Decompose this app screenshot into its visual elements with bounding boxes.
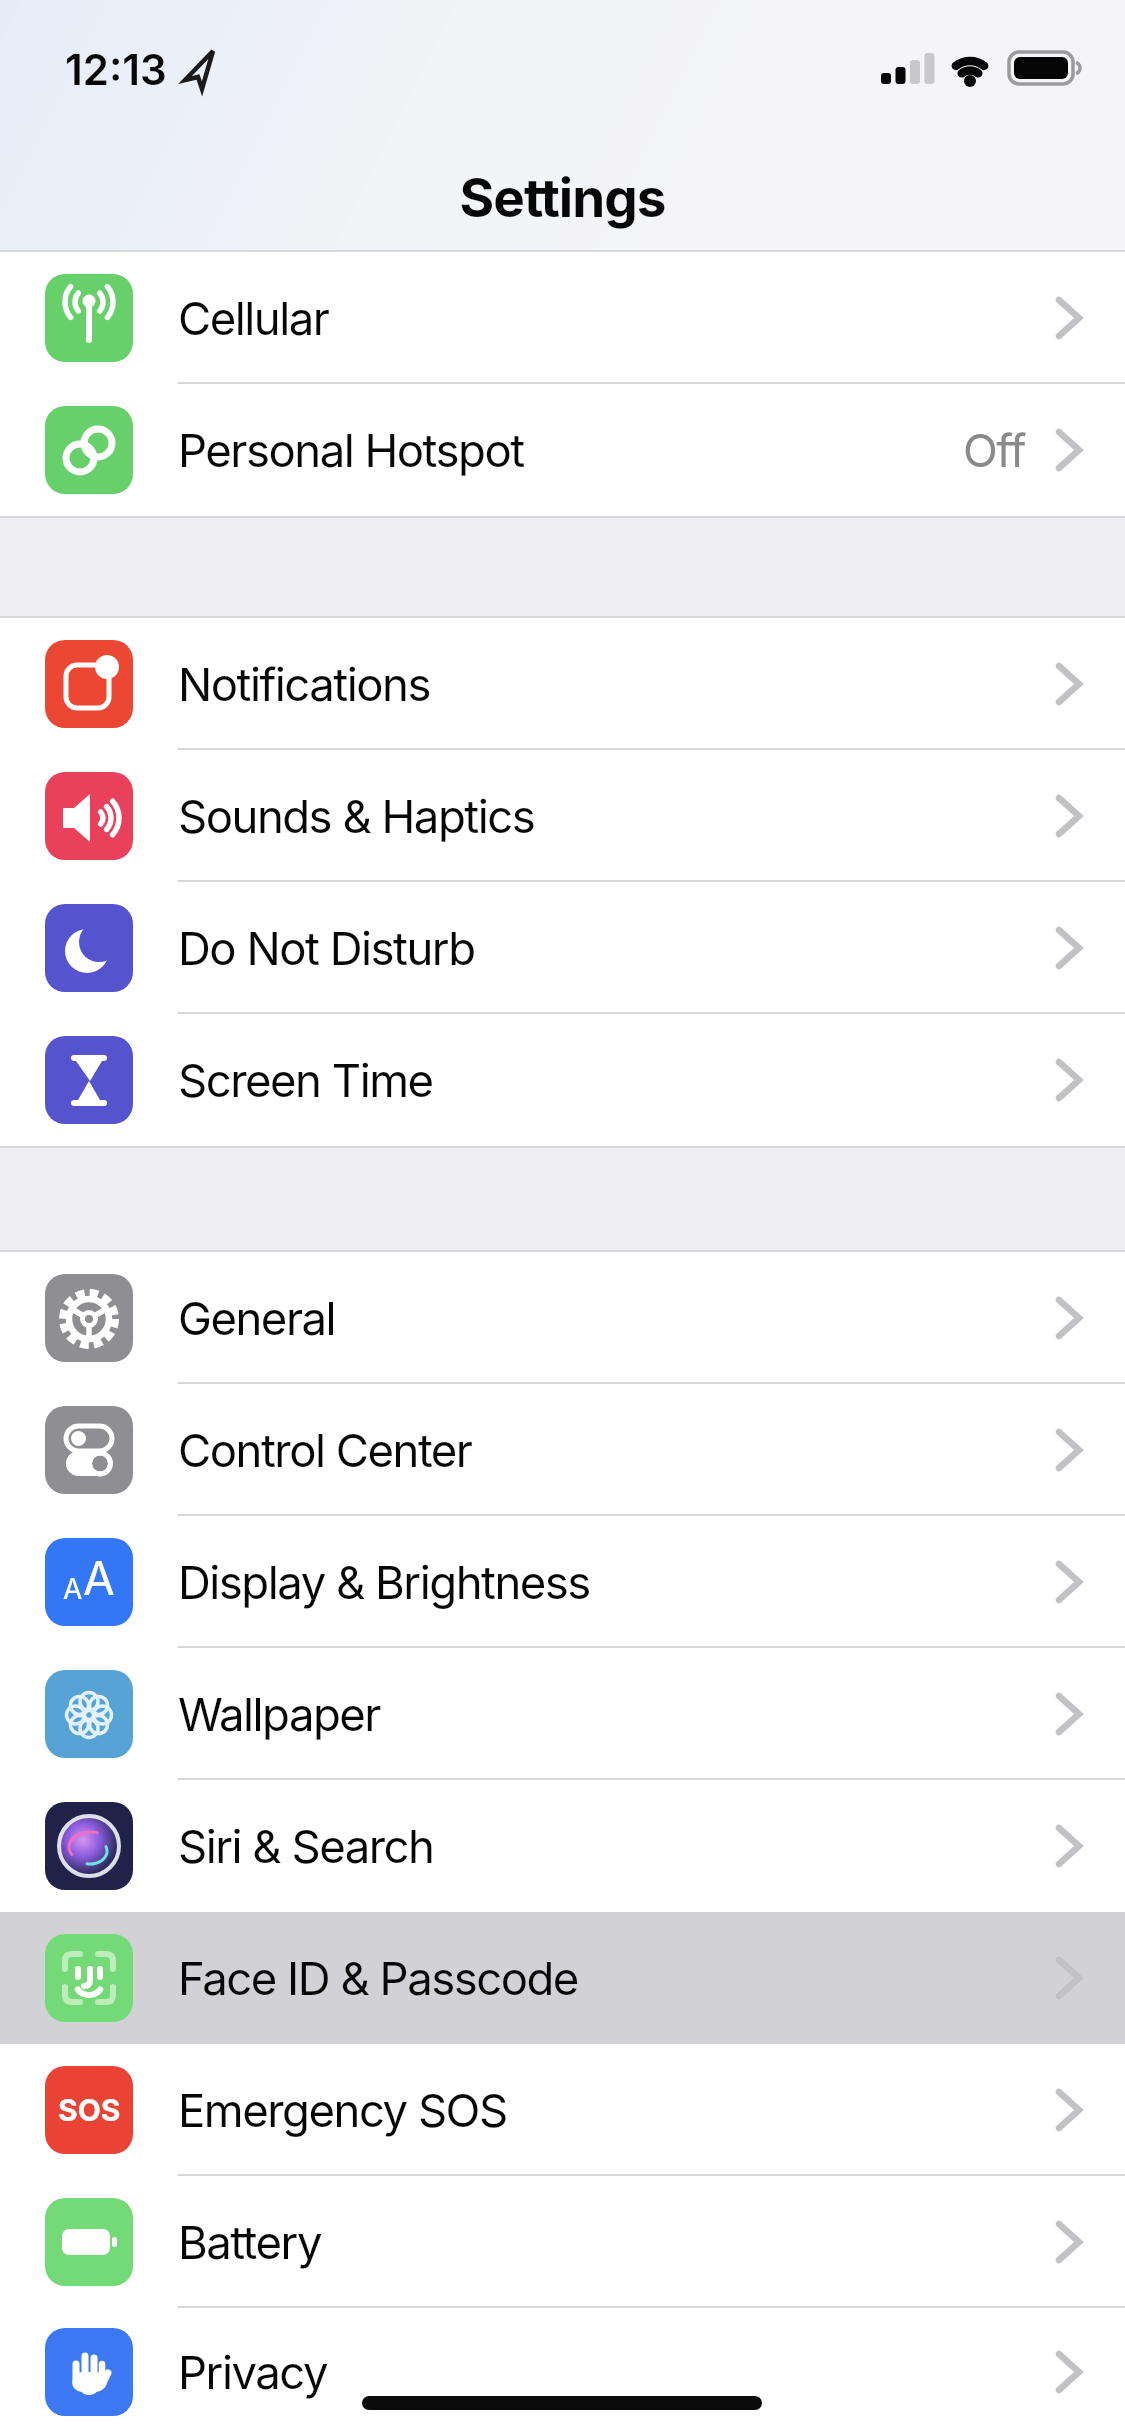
button[interactable]: Siri & Search xyxy=(0,1780,1125,1912)
staticText: Screen Time xyxy=(178,1053,433,1108)
staticText: SOS xyxy=(58,2092,121,2128)
staticText: Off xyxy=(963,423,1026,478)
staticText: Face ID & Passcode xyxy=(178,1951,578,2006)
button[interactable]: General xyxy=(0,1252,1125,1384)
button[interactable]: Privacy xyxy=(0,2308,1125,2436)
button[interactable]: SOS xyxy=(0,2044,1125,2176)
staticText: Siri & Search xyxy=(178,1819,434,1874)
button[interactable]: Do Not Disturb xyxy=(0,882,1125,1014)
button[interactable]: Personal Hotspot xyxy=(0,384,1125,516)
staticText: Settings xyxy=(0,166,1125,230)
staticText: A xyxy=(63,1572,83,1606)
staticText: 12:13 xyxy=(65,44,167,95)
button[interactable]: Cellular xyxy=(0,252,1125,384)
staticText: Emergency SOS xyxy=(178,2083,507,2138)
staticText: Battery xyxy=(178,2215,321,2270)
button[interactable]: Screen Time xyxy=(0,1014,1125,1146)
staticText: Cellular xyxy=(178,291,329,346)
button[interactable]: Wallpaper xyxy=(0,1648,1125,1780)
staticText: Wallpaper xyxy=(178,1687,380,1742)
staticText: A xyxy=(83,1550,115,1606)
button[interactable]: Face ID & Passcode xyxy=(0,1912,1125,2044)
staticText: Display & Brightness xyxy=(178,1555,590,1610)
staticText: Notifications xyxy=(178,657,430,712)
button[interactable]: Control Center xyxy=(0,1384,1125,1516)
staticText: Sounds & Haptics xyxy=(178,789,535,844)
staticText: Do Not Disturb xyxy=(178,921,475,976)
staticText: General xyxy=(178,1291,336,1346)
button[interactable]: Notifications xyxy=(0,618,1125,750)
button[interactable]: Battery xyxy=(0,2176,1125,2308)
staticText: Privacy xyxy=(178,2345,327,2400)
staticText: Control Center xyxy=(178,1423,472,1478)
button[interactable]: A xyxy=(0,1516,1125,1648)
button[interactable]: Sounds & Haptics xyxy=(0,750,1125,882)
staticText: Personal Hotspot xyxy=(178,423,524,478)
